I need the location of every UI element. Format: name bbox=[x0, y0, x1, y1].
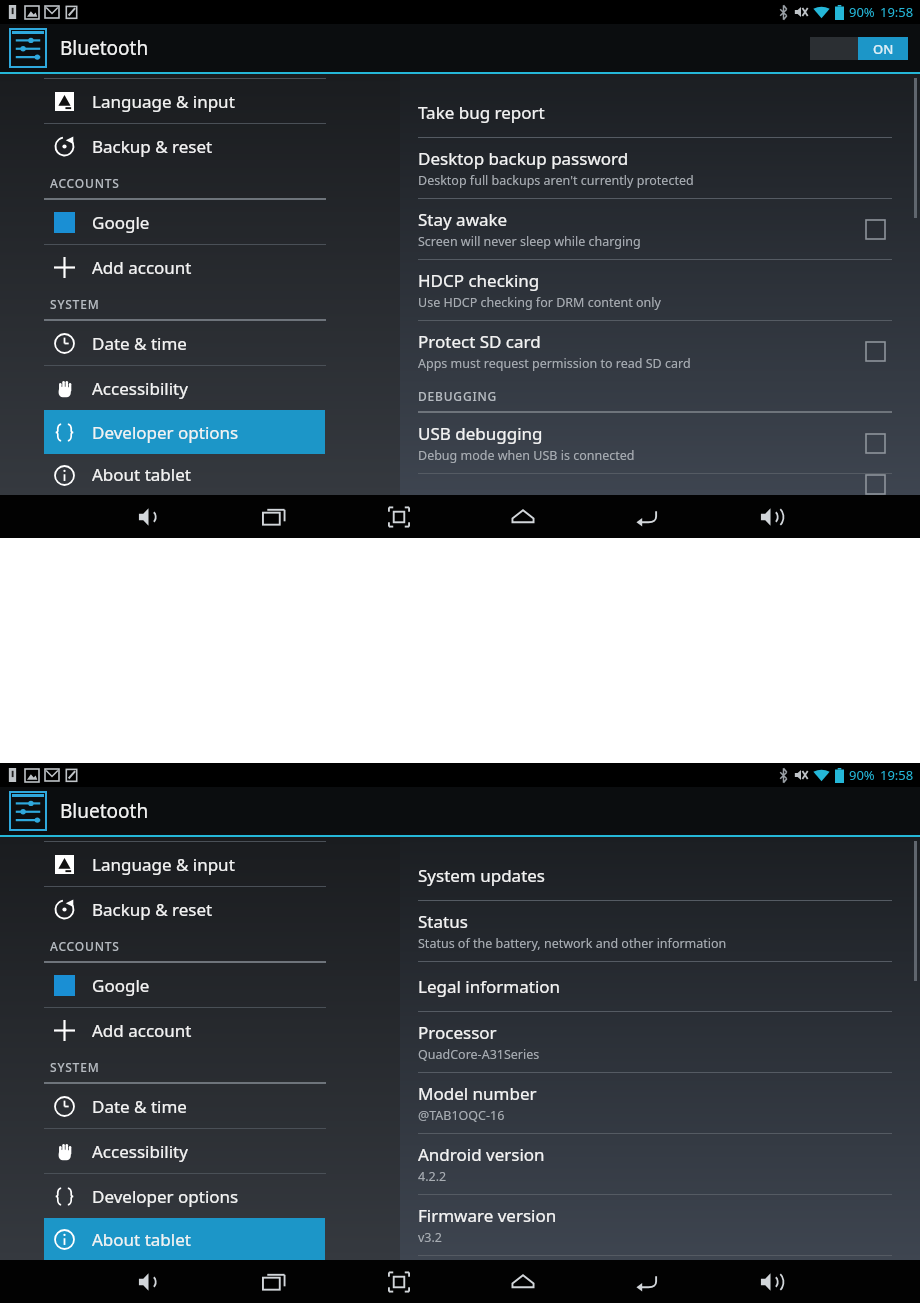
button[interactable]: Volume up bbox=[742, 1262, 800, 1302]
staticText: Backup & reset bbox=[92, 135, 213, 158]
button[interactable]: Accessibility bbox=[44, 366, 325, 410]
staticText: Google bbox=[92, 974, 150, 997]
staticText: Bluetooth bbox=[60, 798, 149, 824]
button[interactable]: Home bbox=[494, 497, 552, 537]
staticText: ON bbox=[873, 40, 894, 58]
button[interactable]: Volume down bbox=[120, 497, 178, 537]
staticText: Backup & reset bbox=[92, 898, 213, 921]
staticText: Add account bbox=[92, 1019, 192, 1042]
button[interactable]: Stay awake checkbox bbox=[858, 212, 892, 246]
staticText: Language & input bbox=[92, 90, 235, 113]
button[interactable]: USB debugging checkbox bbox=[858, 426, 892, 460]
staticText: Date & time bbox=[92, 1095, 187, 1118]
staticText: About tablet bbox=[92, 463, 191, 486]
button[interactable]: Recent apps bbox=[245, 1262, 303, 1302]
staticText: USB debugging bbox=[418, 422, 543, 445]
button[interactable]: Backup & reset bbox=[44, 124, 325, 168]
button[interactable]: Add account bbox=[44, 245, 325, 289]
button[interactable]: Screenshot bbox=[370, 497, 428, 537]
button[interactable]: Bluetooth settings, navigate up bbox=[10, 792, 149, 830]
button[interactable]: Home bbox=[494, 1262, 552, 1302]
button[interactable]: About tablet bbox=[44, 454, 325, 495]
staticText: Add account bbox=[92, 256, 192, 279]
staticText: System updates bbox=[418, 864, 546, 887]
staticText: Debug mode when USB is connected bbox=[418, 447, 635, 464]
button[interactable]: Add account bbox=[44, 1008, 325, 1052]
button[interactable]: Processor bbox=[400, 1012, 920, 1072]
button[interactable]: HDCP checking bbox=[400, 260, 920, 320]
button[interactable]: Stay awake bbox=[400, 199, 920, 259]
staticText: Google bbox=[92, 211, 150, 234]
button[interactable]: Date & time bbox=[44, 321, 325, 365]
staticText: About tablet bbox=[92, 1228, 191, 1251]
button[interactable]: Protect SD card bbox=[400, 321, 920, 381]
button[interactable]: Desktop backup password bbox=[400, 138, 920, 198]
staticText: @TAB1OQC-16 bbox=[418, 1107, 505, 1124]
staticText: ACCOUNTS bbox=[50, 938, 120, 954]
button[interactable]: Developer options bbox=[44, 1174, 325, 1218]
staticText: Take bug report bbox=[418, 101, 545, 124]
button[interactable]: Android version bbox=[400, 1134, 920, 1194]
button[interactable]: Language & input bbox=[44, 842, 325, 886]
staticText: Legal information bbox=[418, 975, 561, 998]
button[interactable]: Firmware version bbox=[400, 1195, 920, 1255]
staticText: Accessibility bbox=[92, 377, 188, 400]
button[interactable]: Model number bbox=[400, 1073, 920, 1133]
button[interactable]: Accessibility bbox=[44, 1129, 325, 1173]
button[interactable]: Google bbox=[44, 200, 325, 244]
staticText: Language & input bbox=[92, 853, 235, 876]
staticText: HDCP checking bbox=[418, 269, 540, 292]
staticText: v3.2 bbox=[418, 1229, 443, 1246]
staticText: QuadCore-A31Series bbox=[418, 1046, 540, 1063]
staticText: 90% bbox=[849, 3, 875, 21]
staticText: Stay awake bbox=[418, 208, 508, 231]
staticText: Status bbox=[418, 910, 468, 933]
button[interactable]: Power menu bug reports checkbox bbox=[858, 474, 892, 495]
button[interactable]: Backup & reset bbox=[44, 887, 325, 931]
button[interactable]: Back bbox=[618, 1262, 676, 1302]
button[interactable]: Google bbox=[44, 963, 325, 1007]
staticText: Screen will never sleep while charging bbox=[418, 233, 641, 250]
button[interactable]: Developer options bbox=[44, 410, 325, 454]
staticText: Desktop full backups aren't currently pr… bbox=[418, 172, 694, 189]
staticText: SYSTEM bbox=[50, 296, 100, 312]
button[interactable]: Power menu bug reports bbox=[400, 474, 920, 495]
button[interactable]: Back bbox=[618, 497, 676, 537]
staticText: ACCOUNTS bbox=[50, 175, 120, 191]
staticText: Status of the battery, network and other… bbox=[418, 935, 727, 952]
staticText: Accessibility bbox=[92, 1140, 188, 1163]
button[interactable]: About tablet bbox=[44, 1218, 325, 1260]
staticText: Model number bbox=[418, 1082, 537, 1105]
staticText: Use HDCP checking for DRM content only bbox=[418, 294, 661, 311]
button[interactable]: Bluetooth settings, navigate up bbox=[10, 29, 149, 67]
staticText: Protect SD card bbox=[418, 330, 541, 353]
staticText: Developer options bbox=[92, 421, 239, 444]
staticText: Date & time bbox=[92, 332, 187, 355]
button[interactable]: Screenshot bbox=[370, 1262, 428, 1302]
button[interactable]: Volume up bbox=[742, 497, 800, 537]
staticText: Desktop backup password bbox=[418, 147, 629, 170]
staticText: Apps must request permission to read SD … bbox=[418, 355, 691, 372]
staticText: Developer options bbox=[92, 1185, 239, 1208]
button[interactable]: Protect SD card checkbox bbox=[858, 334, 892, 368]
staticText: Processor bbox=[418, 1021, 497, 1044]
button[interactable]: System updates bbox=[400, 837, 920, 900]
staticText: SYSTEM bbox=[50, 1059, 100, 1075]
button[interactable]: Status bbox=[400, 901, 920, 961]
staticText: Firmware version bbox=[418, 1204, 557, 1227]
button[interactable]: Volume down bbox=[120, 1262, 178, 1302]
button[interactable]: Take bug report bbox=[400, 74, 920, 137]
button[interactable]: Legal information bbox=[400, 962, 920, 1011]
button[interactable]: USB debugging bbox=[400, 413, 920, 473]
staticText: Bluetooth bbox=[60, 35, 149, 61]
staticText: DEBUGGING bbox=[418, 388, 498, 404]
button[interactable]: Language & input bbox=[44, 79, 325, 123]
staticText: 90% bbox=[849, 766, 875, 784]
button[interactable]: Recent apps bbox=[245, 497, 303, 537]
staticText: 4.2.2 bbox=[418, 1168, 447, 1185]
button[interactable]: Date & time bbox=[44, 1084, 325, 1128]
button[interactable]: Bluetooth on/off switch bbox=[810, 37, 908, 60]
staticText: 19:58 bbox=[880, 766, 914, 784]
